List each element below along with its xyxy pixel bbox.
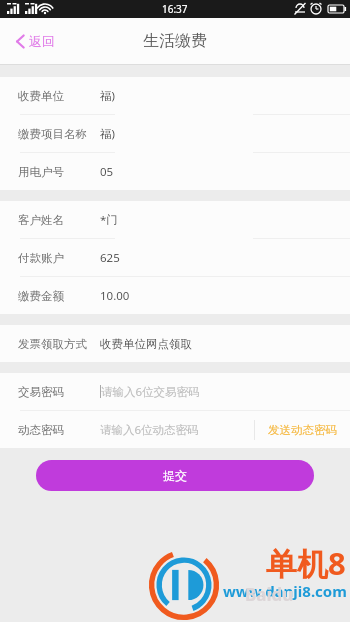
button[interactable]: 交易密码 <box>0 373 350 410</box>
button[interactable]: 收费单位 <box>0 77 350 114</box>
staticText: *门 <box>100 212 118 228</box>
staticText: 交易密码 <box>18 385 64 399</box>
button[interactable]: 缴费金额 <box>0 277 350 314</box>
staticText: Baidu <box>245 583 294 606</box>
staticText: 10.00 <box>100 288 130 304</box>
button[interactable]: 付款账户 <box>0 239 350 276</box>
staticText: 缴费金额 <box>18 289 64 303</box>
staticText: 付款账户 <box>18 251 64 265</box>
button[interactable]: 发送动态密码 <box>255 415 350 445</box>
button[interactable]: 发票领取方式 <box>0 325 350 362</box>
staticText: 生活缴费 <box>143 31 207 51</box>
staticText: 动态密码 <box>18 423 64 437</box>
button[interactable]: 客户姓名 <box>0 201 350 238</box>
staticText: 客户姓名 <box>18 213 64 227</box>
staticText: 请输入6位交易密码 <box>101 384 200 400</box>
staticText: 福) <box>100 126 115 142</box>
button[interactable]: 缴费项目名称 <box>0 115 350 152</box>
staticText: 05 <box>100 164 114 180</box>
button[interactable]: 动态密码 <box>0 411 350 448</box>
staticText: 发送动态密码 <box>268 423 337 437</box>
button[interactable]: 提交 <box>36 460 314 491</box>
staticText: 单机8 <box>266 542 346 584</box>
staticText: 16:37 <box>162 2 188 16</box>
staticText: 625 <box>100 250 120 266</box>
staticText: 提交 <box>163 468 187 483</box>
staticText: 福) <box>100 88 115 104</box>
staticText: 收费单位网点领取 <box>100 337 192 351</box>
button[interactable]: 用电户号 <box>0 153 350 190</box>
staticText: 缴费项目名称 <box>18 127 87 141</box>
staticText: 用电户号 <box>18 165 64 179</box>
staticText: 返回 <box>29 33 55 49</box>
staticText: 发票领取方式 <box>18 337 87 351</box>
staticText: www.danji8.com <box>223 581 347 601</box>
button[interactable]: 返回 <box>12 27 59 55</box>
staticText: 收费单位 <box>18 89 64 103</box>
staticText: 请输入6位动态密码 <box>100 422 199 438</box>
